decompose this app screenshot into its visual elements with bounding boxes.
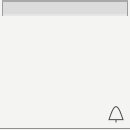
button[interactable]: Notifications	[106, 104, 126, 125]
